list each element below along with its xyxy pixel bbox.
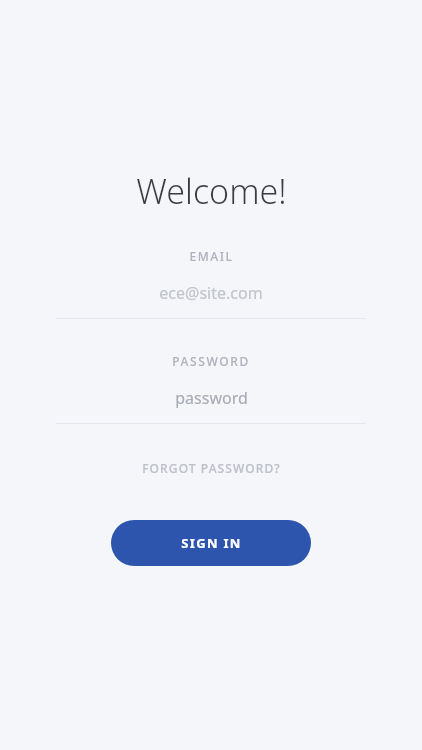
staticText: EMAIL [189,248,234,264]
button[interactable]: PASSWORD [56,353,366,424]
staticText: ece@site.com [159,282,263,304]
staticText: Welcome! [136,168,287,214]
button[interactable]: FORGOT PASSWORD? [136,454,287,482]
staticText: SIGN IN [181,534,242,552]
staticText: password [175,387,248,409]
button[interactable]: EMAIL [56,248,366,319]
button[interactable]: Sign in [111,520,311,566]
staticText: PASSWORD [172,353,250,369]
staticText: FORGOT PASSWORD? [142,460,281,476]
